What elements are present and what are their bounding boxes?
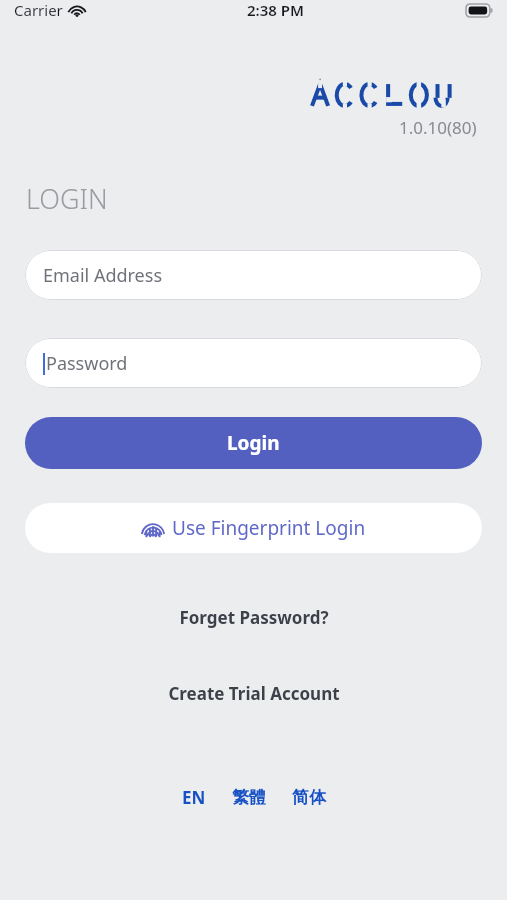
staticText: Use Fingerprint Login (172, 515, 366, 541)
staticText: Login (227, 430, 280, 456)
button[interactable]: Email Address (25, 250, 482, 300)
staticText: 2:38 PM (247, 0, 304, 20)
button[interactable]: EN (176, 783, 212, 812)
staticText: LOGIN (26, 180, 108, 217)
staticText: Password (46, 351, 128, 376)
staticText: Forget Password? (179, 606, 329, 629)
staticText: EN (182, 786, 206, 809)
button[interactable]: Use Fingerprint Login (25, 503, 482, 553)
staticText: Create Trial Account (168, 682, 340, 705)
button[interactable]: 繁體 (226, 784, 272, 811)
button[interactable]: Create Trial Account (158, 678, 350, 709)
button[interactable]: Password (25, 338, 482, 388)
staticText: 繁體 (232, 787, 266, 808)
button[interactable]: Login (25, 417, 482, 469)
staticText: 简体 (292, 787, 326, 808)
button[interactable]: Forget Password? (169, 602, 339, 633)
staticText: Email Address (43, 263, 163, 288)
button[interactable]: 简体 (286, 784, 332, 811)
staticText: 1.0.10(80) (399, 116, 477, 139)
staticText: Carrier (14, 0, 63, 20)
